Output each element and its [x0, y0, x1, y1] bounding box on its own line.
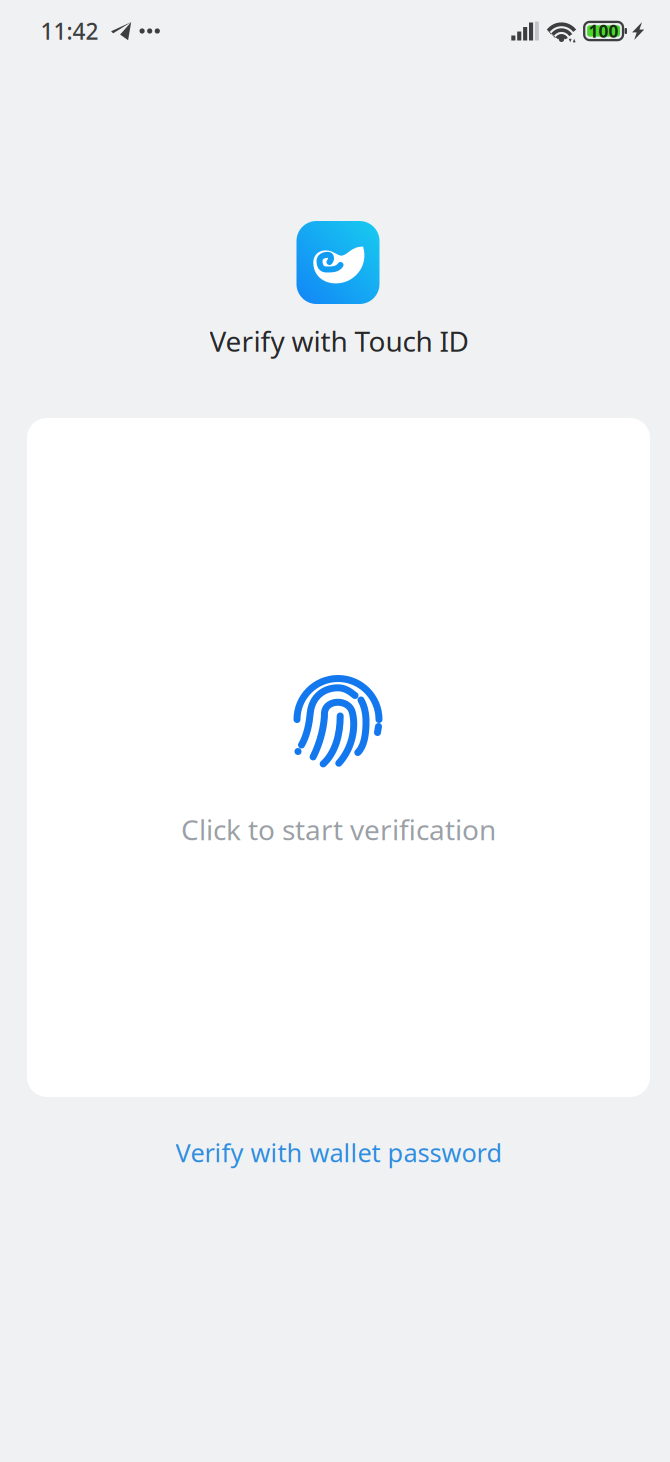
staticText: Verify with wallet password — [175, 1136, 502, 1169]
button[interactable]: Verify with wallet password — [147, 1120, 530, 1185]
button[interactable]: Click to start verification — [27, 418, 650, 1097]
staticText: Verify with Touch ID — [209, 322, 468, 360]
staticText: 100 — [589, 19, 619, 42]
staticText: 11:42 — [40, 16, 98, 46]
staticText: Click to start verification — [181, 811, 496, 848]
